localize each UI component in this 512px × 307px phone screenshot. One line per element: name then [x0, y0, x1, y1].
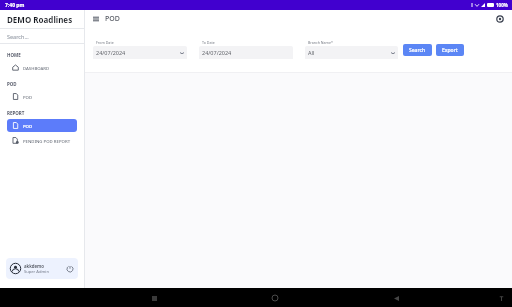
button[interactable]: Back — [390, 292, 402, 304]
button[interactable]: Search — [403, 44, 432, 56]
staticText: To Date — [202, 40, 215, 45]
button[interactable]: 24/07/2024 — [93, 46, 187, 59]
button[interactable]: POD — [7, 119, 77, 132]
staticText: Search... — [7, 33, 29, 40]
staticText: Branch Name* — [308, 40, 333, 45]
button[interactable]: Export — [436, 44, 464, 56]
staticText: 100% — [496, 2, 508, 8]
staticText: DASHBOARD — [23, 65, 50, 71]
button[interactable]: Home — [269, 292, 281, 304]
staticText: All — [308, 49, 315, 56]
staticText: DEMO Roadlines — [7, 14, 73, 25]
staticText: POD — [23, 123, 33, 129]
button[interactable]: All — [305, 46, 398, 59]
button[interactable]: Settings — [494, 13, 506, 25]
staticText: 24/07/2024 — [96, 49, 126, 56]
button[interactable]: 24/07/2024 — [199, 46, 293, 59]
staticText: 7:40 pm — [5, 2, 25, 9]
staticText: HOME — [7, 52, 21, 58]
button[interactable]: Logout — [66, 265, 74, 273]
staticText: Export — [442, 47, 458, 54]
button[interactable]: Search... — [0, 29, 84, 43]
staticText: 24/07/2024 — [202, 49, 232, 56]
button[interactable]: Menu — [91, 14, 101, 24]
staticText: REPORT — [7, 110, 25, 116]
button[interactable]: POD — [7, 90, 77, 103]
button[interactable]: akkdemo — [6, 258, 78, 279]
staticText: Super Admin — [24, 269, 49, 275]
staticText: Search — [409, 47, 426, 54]
button[interactable]: PENDING POD REPORT — [7, 134, 77, 147]
staticText: PENDING POD REPORT — [23, 138, 71, 144]
staticText: POD — [7, 81, 17, 87]
button[interactable]: Hide keyboard — [495, 292, 507, 304]
staticText: From Date — [96, 40, 114, 45]
button[interactable]: Recents — [148, 292, 160, 304]
staticText: akkdemo — [24, 263, 44, 269]
staticText: POD — [105, 14, 120, 24]
button[interactable]: DASHBOARD — [7, 61, 77, 74]
staticText: POD — [23, 94, 33, 100]
